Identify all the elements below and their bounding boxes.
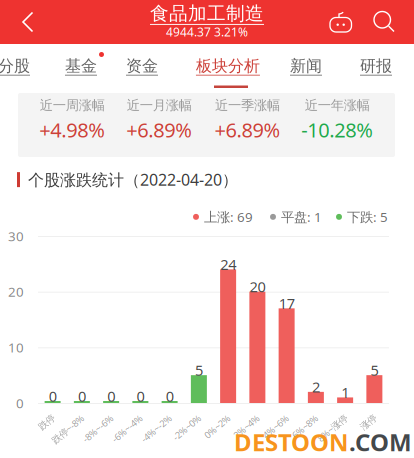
staticText: 研报 [360, 56, 392, 76]
staticText: -10.28% [301, 116, 373, 143]
staticText: 近一年涨幅 [305, 97, 370, 113]
staticText: -6%~-4% [104, 410, 141, 423]
staticText: 2%~4% [227, 410, 258, 423]
staticText: 近一季涨幅 [215, 97, 280, 113]
staticText: 24 [220, 255, 236, 274]
staticText: 2 [312, 377, 320, 397]
button[interactable]: 资金 [126, 44, 164, 89]
staticText: 平盘: 1 [281, 208, 322, 226]
staticText: 基金 [65, 56, 97, 76]
button[interactable]: Assistant [319, 0, 363, 44]
staticText: 5 [195, 360, 203, 380]
staticText: +6.89% [214, 116, 280, 143]
staticText: 4944.37 3.21% [166, 24, 248, 40]
staticText: 资金 [126, 56, 158, 76]
staticText: +6.89% [126, 116, 192, 143]
staticText: -4%~-2% [134, 410, 171, 423]
staticText: +4.98% [39, 116, 105, 143]
staticText: 0 [107, 386, 115, 406]
staticText: 0 [166, 386, 174, 406]
button[interactable]: Back [0, 0, 56, 44]
staticText: 新闻 [290, 56, 322, 76]
staticText: 6%~8% [286, 410, 317, 423]
button[interactable]: 研报 [360, 44, 398, 89]
staticText: 5 [370, 360, 378, 380]
staticText: -2%~0% [166, 410, 200, 423]
button[interactable]: 基金 [65, 44, 103, 89]
staticText: -8%~-6% [75, 410, 112, 423]
staticText: 4%~6% [257, 410, 288, 423]
staticText: 20 [249, 277, 265, 296]
staticText: 0 [78, 386, 86, 406]
staticText: 跌停~-8% [44, 410, 83, 423]
staticText: 跌停 [36, 411, 54, 422]
button[interactable]: 新闻 [290, 44, 328, 89]
staticText: 0 [136, 386, 144, 406]
staticText: 20 [8, 283, 24, 300]
staticText: .COM [349, 426, 412, 458]
staticText: 0 [16, 394, 24, 412]
staticText: 涨停 [357, 411, 375, 422]
staticText: 近一月涨幅 [127, 97, 192, 113]
staticText: 17 [279, 294, 295, 313]
staticText: 下跌: 5 [347, 208, 388, 226]
staticText: 上涨: 69 [204, 208, 253, 226]
staticText: 0%~2% [198, 410, 229, 423]
staticText: 1 [341, 383, 349, 402]
button[interactable]: 分股 [0, 44, 36, 89]
staticText: 食品加工制造 [150, 2, 264, 25]
staticText: DESTOON [234, 426, 349, 458]
staticText: 8%~涨停 [310, 410, 346, 423]
button[interactable]: 板块分析 [196, 44, 266, 89]
staticText: 板块分析 [196, 56, 260, 76]
button[interactable]: Search [363, 0, 405, 44]
staticText: 近一周涨幅 [40, 97, 105, 113]
staticText: 30 [8, 227, 24, 245]
staticText: 分股 [0, 56, 30, 76]
staticText: 个股涨跌统计（2022-04-20） [28, 169, 238, 190]
staticText: 10 [8, 338, 24, 356]
staticText: 0 [49, 386, 57, 406]
